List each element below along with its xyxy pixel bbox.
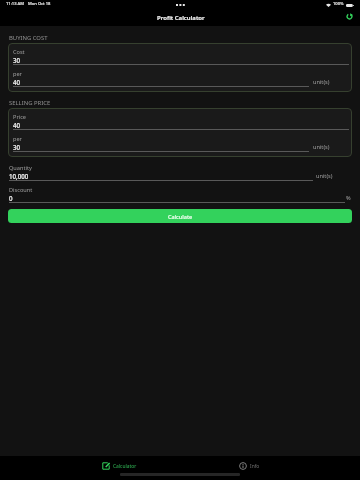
- staticText: %: [346, 194, 351, 202]
- staticText: Profit Calculator: [157, 14, 205, 22]
- staticText: 11:13 AM: [6, 1, 24, 7]
- staticText: 40: [13, 78, 21, 86]
- staticText: 10,000: [9, 172, 29, 180]
- button[interactable]: Calculator: [100, 461, 139, 471]
- staticText: Info: [250, 463, 260, 470]
- staticText: Calculator: [113, 463, 137, 470]
- staticText: 100%: [333, 1, 344, 7]
- staticText: unit(s): [316, 172, 333, 180]
- staticText: Quantity: [9, 164, 32, 172]
- staticText: Discount: [9, 186, 33, 194]
- button[interactable]: Price: [8, 108, 352, 157]
- staticText: 30: [13, 56, 21, 64]
- staticText: per: [13, 135, 22, 143]
- button[interactable]: Info: [237, 461, 262, 471]
- staticText: Mon Oct 18: [28, 1, 51, 7]
- button[interactable]: Reset: [344, 11, 354, 21]
- button[interactable]: Cost: [8, 43, 352, 92]
- staticText: Calculate: [168, 213, 193, 220]
- staticText: BUYING COST: [9, 34, 48, 42]
- staticText: per: [13, 70, 22, 78]
- staticText: unit(s): [313, 78, 330, 86]
- staticText: unit(s): [313, 143, 330, 151]
- button[interactable]: Calculate: [8, 209, 352, 223]
- staticText: 40: [13, 121, 21, 129]
- staticText: Price: [13, 113, 26, 121]
- staticText: 30: [13, 143, 21, 151]
- staticText: 0: [9, 194, 13, 202]
- staticText: SELLING PRICE: [9, 99, 51, 107]
- staticText: Cost: [13, 48, 25, 56]
